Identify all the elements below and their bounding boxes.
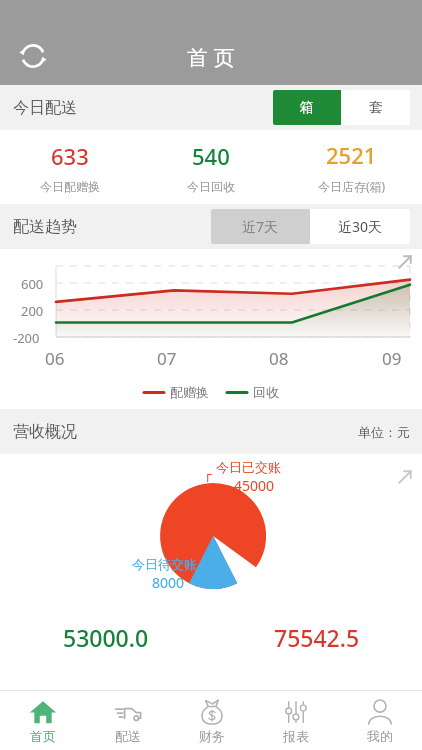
button[interactable]: 53000.0 [0, 622, 211, 653]
staticText: 200 [21, 302, 44, 320]
staticText: 今日待交账 [132, 556, 197, 572]
staticText: 06 [45, 347, 65, 370]
staticText: 53000.0 [63, 622, 149, 653]
staticText: 今日店存(箱) [318, 178, 386, 194]
staticText: 配送趋势 [13, 217, 77, 237]
button[interactable]: 2521 [281, 130, 422, 204]
staticText: 2521 [326, 140, 377, 170]
button[interactable]: 633 [0, 130, 140, 204]
staticText: 今日配赠换 [40, 179, 100, 194]
button[interactable]: 套 [341, 90, 410, 125]
staticText: 回收 [253, 384, 279, 400]
staticText: 近30天 [338, 217, 383, 236]
staticText: 今日配送 [13, 98, 77, 118]
staticText: 45000 [234, 476, 275, 495]
button[interactable]: 财务 [170, 691, 254, 750]
staticText: 首页 [30, 728, 56, 744]
staticText: 07 [157, 347, 177, 370]
staticText: 报表 [283, 728, 309, 744]
staticText: 08 [269, 347, 289, 370]
staticText: 近7天 [242, 217, 279, 236]
staticText: -200 [13, 329, 40, 347]
staticText: 营收概况 [13, 422, 77, 442]
button[interactable]: Expand delivery trend chart [392, 249, 418, 275]
staticText: 600 [21, 275, 44, 293]
staticText: 09 [382, 347, 402, 370]
staticText: 540 [192, 141, 230, 171]
staticText: 8000 [152, 573, 185, 592]
button[interactable]: 600 [0, 249, 422, 409]
staticText: 633 [51, 141, 89, 171]
staticText: 财务 [199, 728, 225, 744]
staticText: 配赠换 [170, 384, 209, 400]
staticText: 75542.5 [274, 622, 360, 653]
button[interactable]: Expand revenue chart [392, 464, 418, 490]
button[interactable]: 540 [140, 130, 281, 204]
staticText: 套 [369, 99, 383, 117]
button[interactable] [0, 454, 422, 659]
staticText: 首 页 [187, 43, 235, 72]
button[interactable]: 近30天 [310, 209, 410, 244]
staticText: 我的 [367, 728, 393, 744]
button[interactable]: 报表 [254, 691, 338, 750]
button[interactable]: 箱 [273, 90, 341, 125]
button[interactable]: 75542.5 [211, 622, 422, 653]
button[interactable]: 配送 [85, 691, 170, 750]
staticText: ┌ [204, 467, 212, 482]
staticText: 单位：元 [358, 424, 410, 440]
staticText: 箱 [300, 99, 314, 117]
button[interactable]: Refresh [8, 31, 58, 81]
staticText: 配送 [115, 728, 141, 744]
button[interactable]: 我的 [338, 691, 422, 750]
button[interactable]: 近7天 [211, 209, 310, 244]
staticText: 今日回收 [187, 179, 235, 194]
staticText: 今日已交账 [216, 459, 281, 475]
button[interactable]: 首页 [0, 691, 85, 750]
